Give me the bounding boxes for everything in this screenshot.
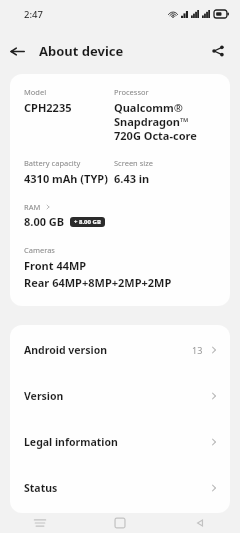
button[interactable]: Version	[10, 373, 230, 419]
button[interactable]: Recent apps	[0, 513, 80, 533]
staticText: RAM	[24, 202, 41, 212]
button[interactable]: Home	[80, 513, 160, 533]
button[interactable]: RAM	[24, 202, 52, 212]
staticText: 6.43 in	[114, 171, 150, 186]
staticText: Legal information	[24, 435, 208, 449]
staticText: Cameras	[24, 245, 55, 255]
staticText: Front 44MP	[24, 258, 87, 273]
button[interactable]: Status	[10, 465, 230, 511]
button[interactable]: Legal information	[10, 419, 230, 465]
staticText: Android version	[24, 343, 192, 357]
staticText: 4310 mAh (TYP)	[24, 171, 108, 186]
staticText: Status	[24, 481, 208, 495]
staticText: 2:47	[24, 8, 43, 21]
staticText: About device	[39, 42, 124, 60]
staticText: Screen size	[114, 158, 153, 168]
button[interactable]: Back	[160, 513, 240, 533]
button[interactable]: Share	[202, 35, 234, 67]
staticText: Processor	[114, 87, 149, 97]
staticText: 8.00 GB	[24, 214, 65, 229]
staticText: Battery capacity	[24, 158, 81, 168]
staticText: Version	[24, 389, 208, 403]
staticText: Rear 64MP+8MP+2MP+2MP	[24, 275, 172, 290]
button[interactable]: Back	[0, 34, 34, 68]
staticText: Qualcomm® Snapdragon™ 720G Octa-core	[114, 100, 197, 143]
staticText: CPH2235	[24, 100, 72, 115]
staticText: + 8.00 GB	[74, 218, 101, 226]
staticText: Model	[24, 87, 47, 97]
button[interactable]: Android version	[10, 327, 230, 373]
staticText: 13	[192, 344, 203, 356]
